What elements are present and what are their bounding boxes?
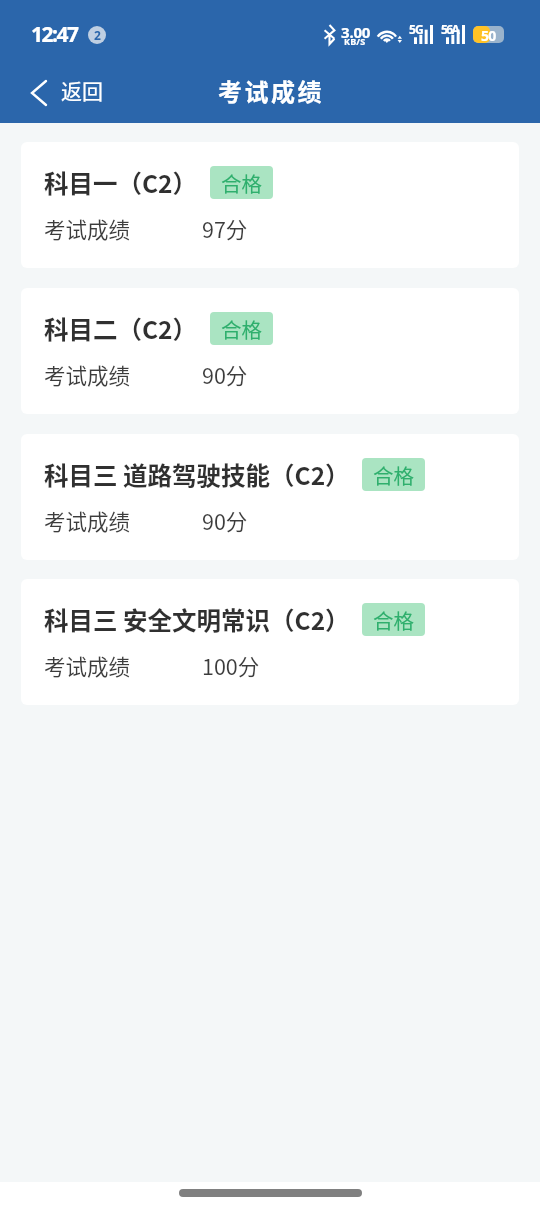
staticText: 合格 (373, 460, 414, 490)
staticText: 合格 (221, 168, 262, 198)
button[interactable]: 科目一（C2） (21, 142, 519, 268)
other: Signal 5G (409, 24, 433, 44)
other: Signal 56A (441, 24, 465, 44)
staticText: 56A (441, 21, 459, 37)
staticText: 科目三 安全文明常识（C2） (44, 602, 350, 637)
staticText: 科目一（C2） (44, 165, 198, 200)
staticText: 考试成绩 (218, 73, 324, 108)
staticText: 90分 (202, 359, 248, 390)
staticText: 12:47 (31, 20, 78, 49)
button[interactable]: 返回 (0, 66, 121, 120)
button[interactable]: 科目二（C2） (21, 288, 519, 414)
staticText: 科目二（C2） (44, 311, 198, 346)
staticText: 考试成绩 (44, 505, 131, 536)
staticText: 50 (481, 26, 496, 43)
button[interactable]: 科目三 道路驾驶技能（C2） (21, 434, 519, 560)
staticText: 97分 (202, 213, 248, 244)
staticText: 科目三 道路驾驶技能（C2） (44, 457, 350, 492)
staticText: 考试成绩 (44, 650, 131, 681)
staticText: 2 (94, 27, 101, 43)
button[interactable]: 科目三 安全文明常识（C2） (21, 579, 519, 705)
other: Wi-Fi (376, 25, 402, 43)
other: Bluetooth (324, 25, 335, 44)
staticText: 90分 (202, 505, 248, 536)
staticText: 3.00 (341, 22, 371, 42)
staticText: 5G (409, 21, 423, 37)
staticText: 100分 (202, 650, 260, 681)
staticText: 返回 (61, 75, 103, 105)
staticText: 合格 (373, 605, 414, 635)
staticText: 考试成绩 (44, 213, 131, 244)
other: Battery 50 percent (473, 26, 504, 43)
staticText: KB/S (344, 35, 366, 47)
staticText: 合格 (221, 314, 262, 344)
staticText: 考试成绩 (44, 359, 131, 390)
